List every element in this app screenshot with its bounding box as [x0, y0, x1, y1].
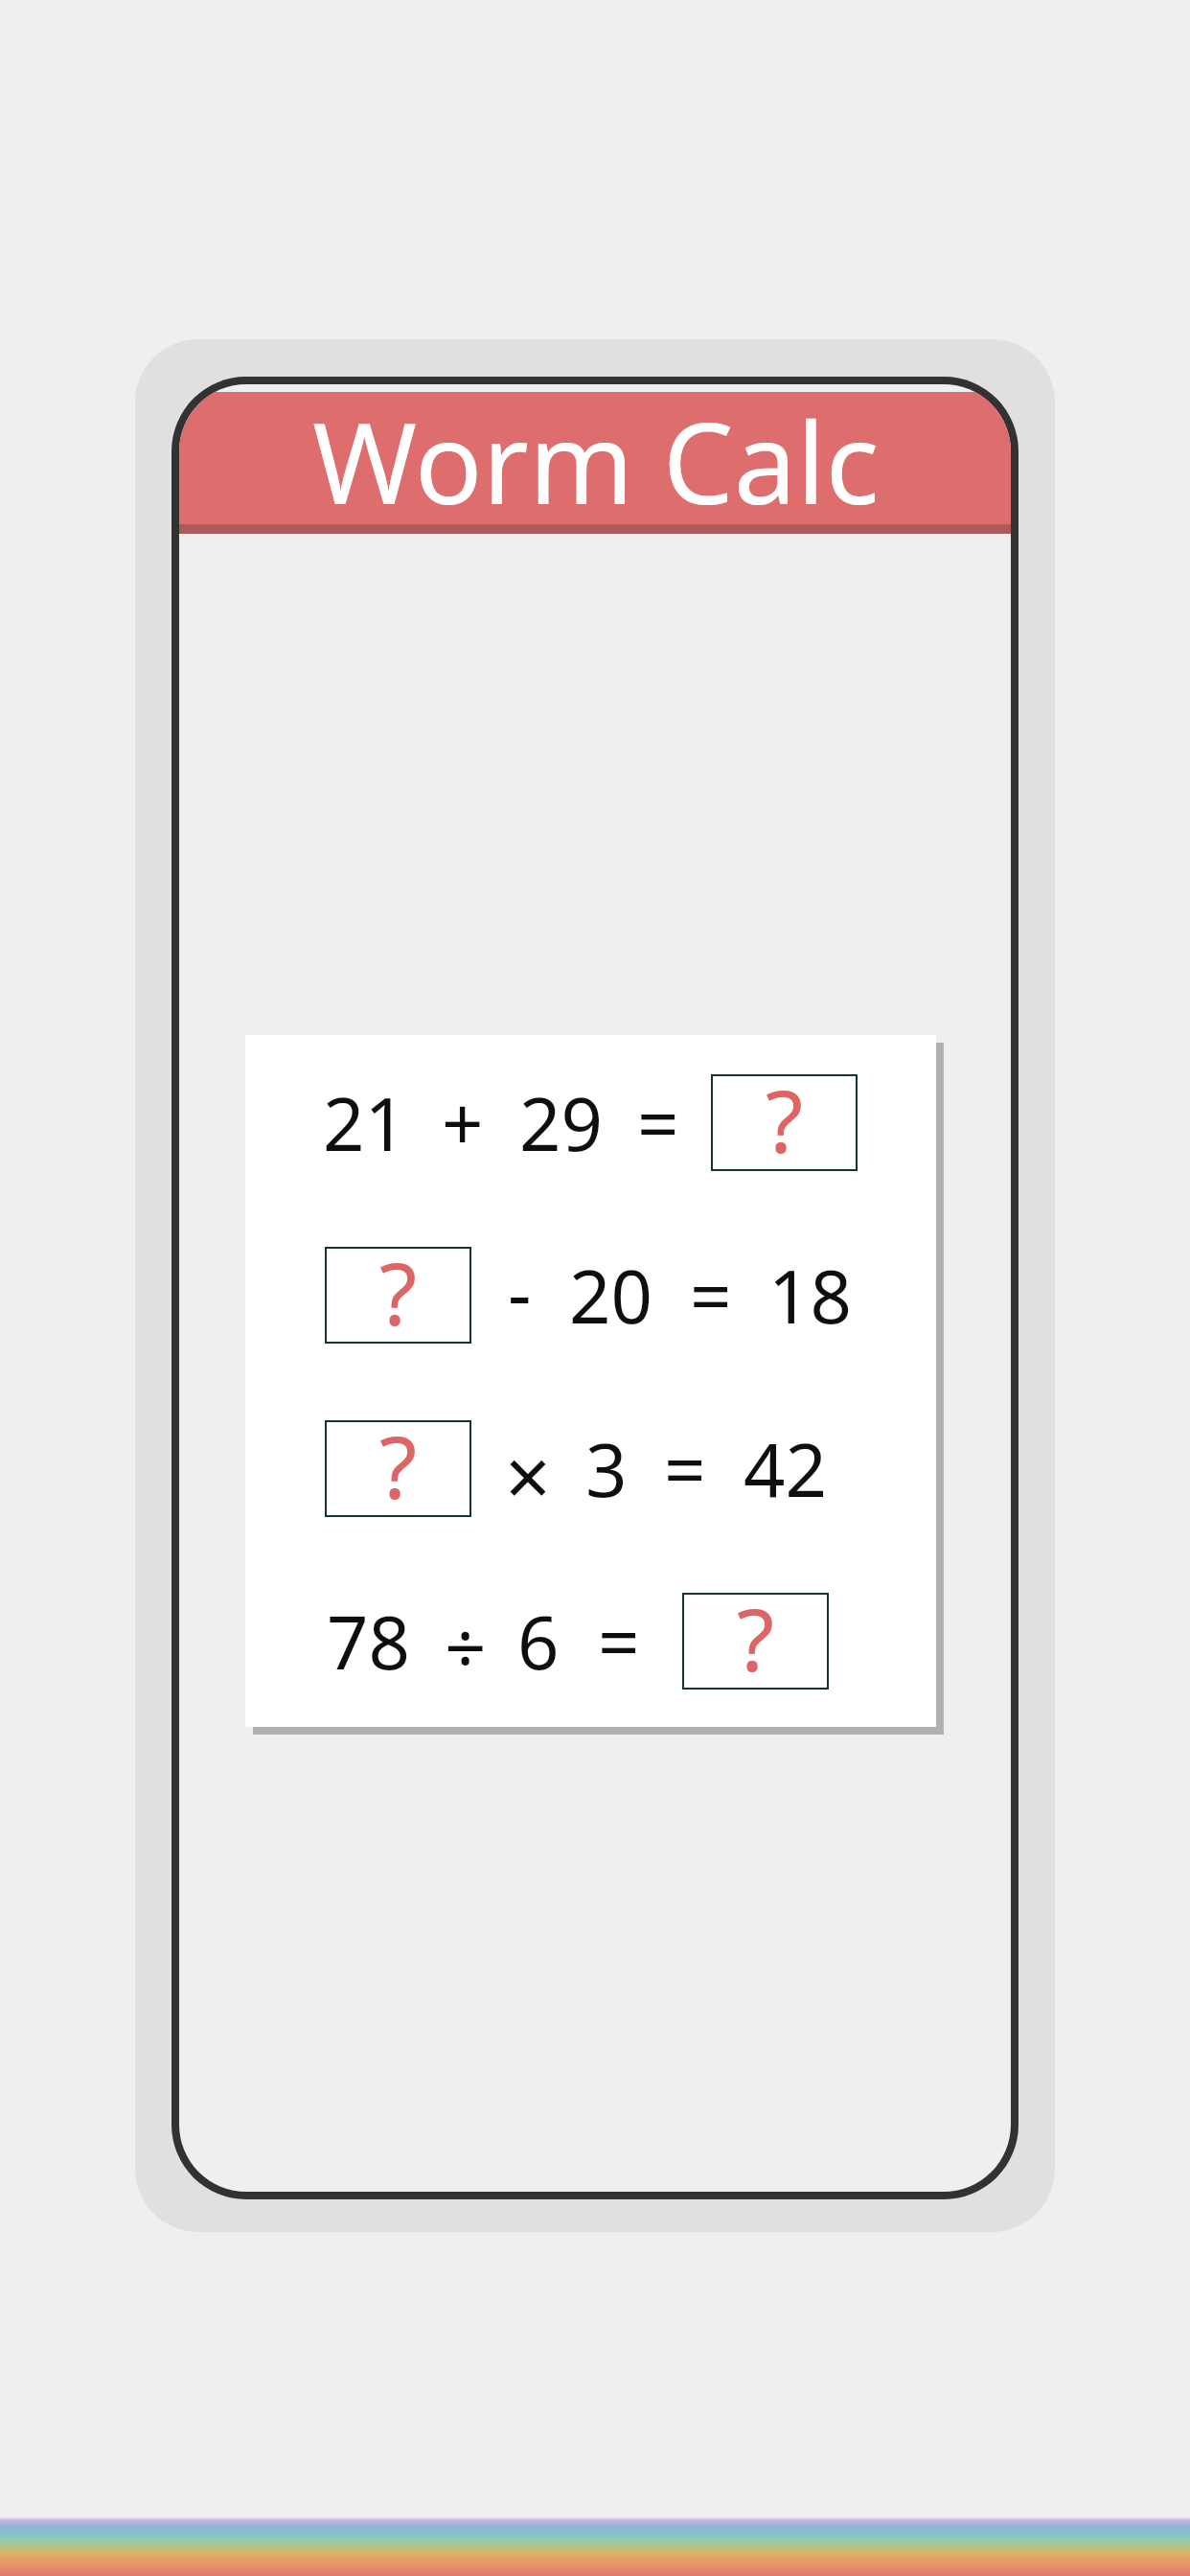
staticText: + [442, 1073, 484, 1169]
staticText: 3 [585, 1419, 628, 1515]
button[interactable]: Unknown value [325, 1247, 471, 1344]
staticText: ÷ [445, 1597, 487, 1692]
staticText: 20 [569, 1246, 652, 1342]
staticText: 78 [327, 1592, 410, 1688]
staticText: 6 [517, 1592, 560, 1688]
staticText: ? [737, 1579, 775, 1676]
staticText: ? [379, 1233, 418, 1330]
staticText: = [664, 1419, 706, 1515]
button[interactable]: Unknown value [682, 1593, 829, 1690]
staticText: 29 [519, 1073, 603, 1169]
staticText: - [508, 1243, 532, 1339]
staticText: × [505, 1420, 552, 1516]
staticText: ? [379, 1407, 418, 1504]
staticText: ? [766, 1061, 804, 1158]
button[interactable]: Unknown value [711, 1074, 858, 1171]
staticText: = [598, 1592, 640, 1688]
staticText: = [690, 1246, 732, 1342]
staticText: Worm Calc [312, 384, 880, 517]
staticText: 21 [323, 1073, 406, 1169]
button[interactable]: Unknown value [325, 1420, 471, 1517]
staticText: 18 [768, 1246, 852, 1342]
staticText: 42 [744, 1419, 827, 1515]
staticText: = [637, 1073, 679, 1169]
